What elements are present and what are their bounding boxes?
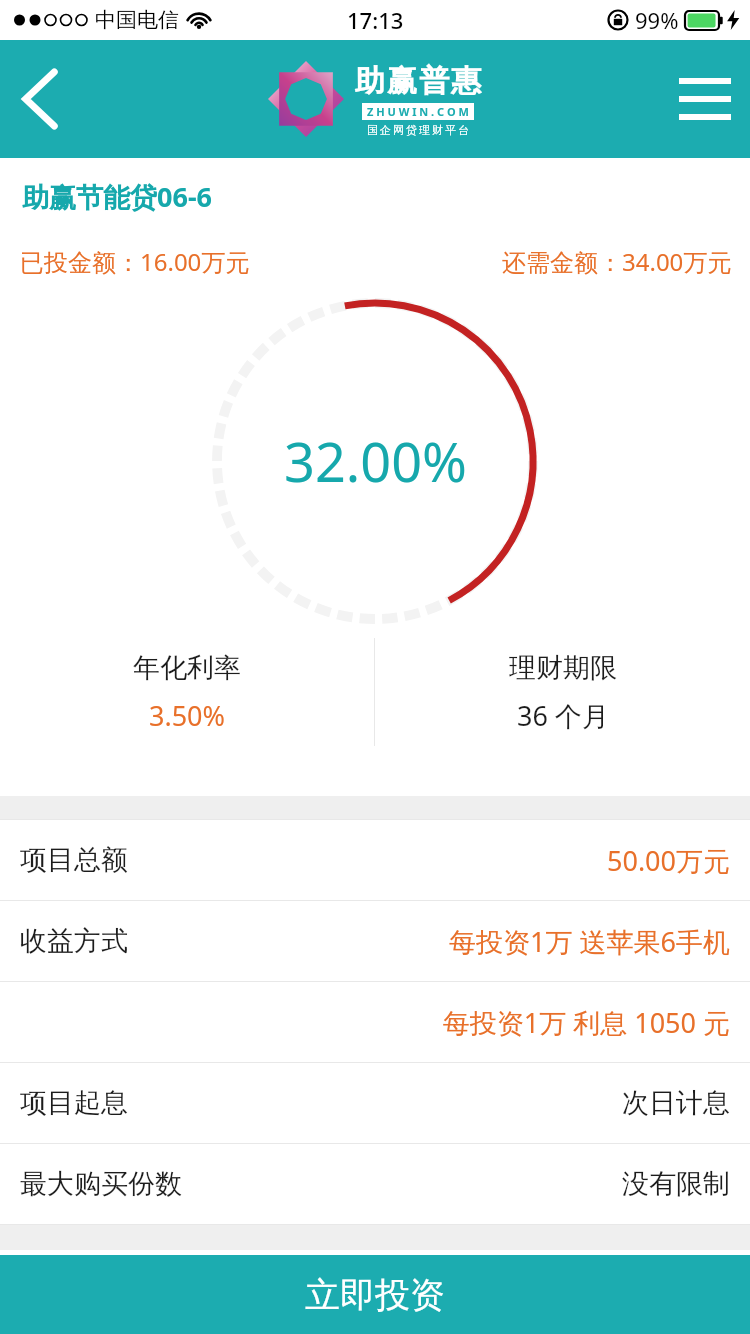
staticText: 理财期限 xyxy=(509,651,617,685)
button[interactable]: Back xyxy=(0,40,80,158)
staticText: 项目起息 xyxy=(20,1086,128,1120)
staticText: 32.00% xyxy=(284,424,467,498)
staticText: 还需金额：34.00万元 xyxy=(502,245,732,278)
staticText: 每投资1万 利息 1050 元 xyxy=(442,1004,730,1041)
staticText: 最大购买份数 xyxy=(20,1167,182,1201)
staticText: Z H U W I N . C O M xyxy=(367,104,469,119)
staticText: 没有限制 xyxy=(622,1167,730,1201)
staticText: 已投金额：16.00万元 xyxy=(20,245,250,278)
button[interactable]: 项目起息 xyxy=(0,1063,750,1144)
staticText: 助赢节能贷06-6 xyxy=(22,178,212,215)
staticText: 立即投资 xyxy=(305,1273,445,1317)
staticText: 年化利率 xyxy=(133,651,241,685)
staticText: 17:13 xyxy=(347,5,404,35)
staticText: 每投资1万 送苹果6手机 xyxy=(449,923,730,960)
staticText: 99% xyxy=(635,5,679,35)
staticText: 助赢普惠 xyxy=(354,62,482,100)
button[interactable]: 最大购买份数 xyxy=(0,1144,750,1225)
staticText: 3.50% xyxy=(149,697,226,734)
staticText: 次日计息 xyxy=(622,1086,730,1120)
staticText: 中国电信 xyxy=(95,7,179,33)
staticText: 收益方式 xyxy=(20,924,128,958)
button[interactable]: 收益方式 xyxy=(0,901,750,982)
staticText: 项目总额 xyxy=(20,843,128,877)
button[interactable]: 立即投资 xyxy=(0,1255,750,1334)
button[interactable]: Menu xyxy=(660,40,750,158)
button[interactable]: 项目总额 xyxy=(0,820,750,901)
staticText: 36 个月 xyxy=(517,697,609,734)
staticText: 国企网贷理财平台 xyxy=(366,123,470,137)
staticText: 50.00万元 xyxy=(606,842,730,879)
button[interactable]: 每投资1万 利息 1050 元 xyxy=(0,982,750,1063)
